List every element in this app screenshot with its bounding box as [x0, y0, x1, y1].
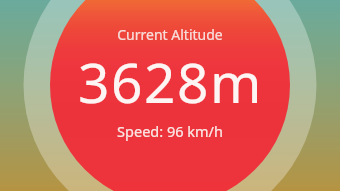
staticText: Current Altitude — [117, 25, 223, 44]
staticText: Speed: 96 km/h — [117, 121, 223, 141]
staticText: 3628m — [78, 44, 263, 119]
button[interactable]: Current altitude 3628 metres, speed 96 k… — [0, 0, 340, 191]
